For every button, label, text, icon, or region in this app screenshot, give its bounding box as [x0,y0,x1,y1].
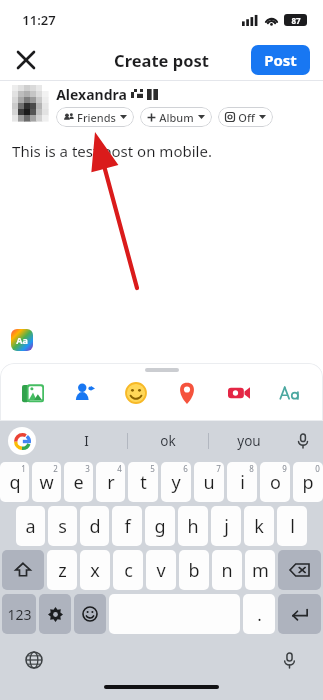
button[interactable]: Change language [24,650,44,670]
staticText: r [107,470,115,495]
button[interactable]: c [113,550,143,590]
staticText: Post [264,50,297,70]
button[interactable]: Tag people [65,374,103,412]
staticText: y [171,470,181,495]
button[interactable]: Album [140,107,212,127]
staticText: e [73,470,84,495]
button[interactable]: t [128,462,158,502]
staticText: ok [160,432,176,450]
button[interactable]: Friends [56,107,134,127]
button[interactable]: Close [8,42,44,78]
button[interactable]: r [96,462,125,502]
button[interactable]: you [209,421,289,460]
staticText: k [254,514,264,539]
staticText: x [90,558,100,583]
button[interactable]: n [212,550,242,590]
staticText: Aa [16,334,28,346]
button[interactable]: d [80,506,109,546]
staticText: Alexandra [56,85,127,104]
staticText: 5 [150,463,155,474]
button[interactable]: Text style [271,374,309,412]
staticText: Off [238,110,255,125]
button[interactable]: l [277,506,307,546]
staticText: o [270,470,281,495]
button[interactable]: Off [218,107,273,127]
staticText: 8 [249,463,254,474]
staticText: 123 [7,605,32,624]
staticText: t [140,470,147,495]
button[interactable]: j [211,506,241,546]
button[interactable]: Enter [278,594,321,634]
button[interactable]: f [112,506,142,546]
button[interactable]: Backspace [278,550,321,590]
button[interactable]: y [161,462,191,502]
button[interactable]: s [48,506,77,546]
staticText: v [156,558,166,583]
button[interactable]: Settings [39,594,71,634]
button[interactable]: z [47,550,77,590]
button[interactable]: Post [251,45,310,75]
staticText: 6 [183,463,188,474]
button[interactable]: k [244,506,274,546]
button[interactable]: Shift [2,550,44,590]
button[interactable]: i [227,462,257,502]
button[interactable]: b [179,550,209,590]
staticText: z [58,558,67,583]
staticText: q [9,470,21,495]
staticText: 2 [53,463,58,474]
staticText: l [290,514,295,539]
button[interactable]: Check in [168,374,206,412]
button[interactable]: m [245,550,275,590]
button[interactable]: Text style [11,329,33,351]
button[interactable]: Emoji [74,594,106,634]
button[interactable]: 123 [2,594,36,634]
button[interactable]: x [80,550,110,590]
staticText: you [237,432,261,450]
staticText: g [154,514,166,539]
button[interactable]: u [194,462,224,502]
staticText: b [188,558,200,583]
button[interactable]: ok [128,421,208,460]
staticText: 9 [282,463,287,474]
staticText: 11:27 [22,11,56,29]
button[interactable]: g [145,506,175,546]
staticText: 87 [291,15,301,26]
staticText: 7 [216,463,221,474]
button[interactable]: w [32,462,61,502]
button[interactable]: Feeling [117,374,155,412]
button[interactable]: Voice typing [279,650,299,670]
button[interactable]: Voice input [292,430,314,452]
staticText: a [25,514,36,539]
staticText: d [89,514,101,539]
button[interactable]: p [293,462,323,502]
staticText: p [302,470,314,495]
staticText: w [39,470,54,495]
staticText: c [124,558,133,583]
staticText: s [58,514,67,539]
staticText: 3 [85,463,90,474]
staticText: 0 [315,463,320,474]
staticText: h [187,514,199,539]
staticText: n [221,558,233,583]
button[interactable]: o [260,462,290,502]
button[interactable]: Google [8,427,36,455]
staticText: Album [159,110,194,125]
staticText: j [224,514,229,539]
button[interactable]: a [16,506,45,546]
button[interactable]: Photo [14,374,52,412]
button[interactable]: Live video [220,374,258,412]
button[interactable]: . [243,594,275,634]
staticText: 1 [21,463,26,474]
button[interactable]: I [46,421,127,460]
staticText: Create post [114,49,209,71]
staticText: I [84,432,89,450]
button[interactable]: e [64,462,93,502]
button[interactable]: q [0,462,29,502]
staticText: m [252,558,269,583]
button[interactable]: h [178,506,208,546]
staticText: i [240,470,245,495]
staticText: f [124,514,131,539]
staticText: Friends [77,110,116,125]
button[interactable]: v [146,550,176,590]
